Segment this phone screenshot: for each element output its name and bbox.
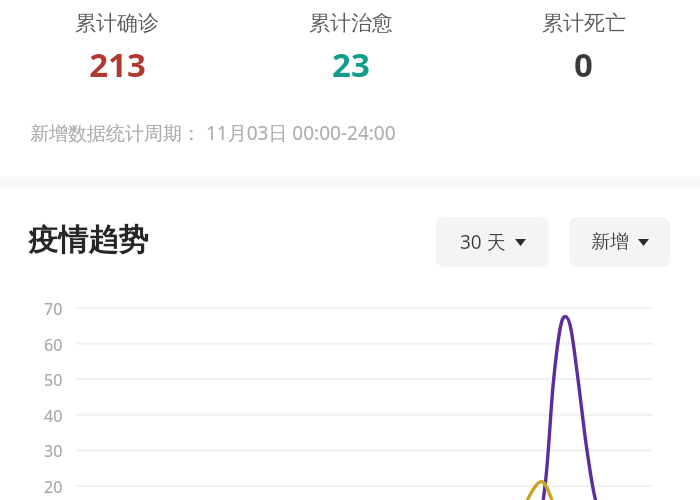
staticText: 60 bbox=[44, 334, 63, 356]
staticText: 213 bbox=[89, 42, 146, 87]
button[interactable]: 累计确诊 bbox=[0, 10, 234, 87]
button[interactable]: 累计治愈 bbox=[234, 10, 467, 87]
button[interactable]: 累计死亡 bbox=[467, 10, 700, 87]
staticText: 70 bbox=[44, 298, 63, 320]
button[interactable]: 新增 bbox=[569, 217, 670, 267]
staticText: 23 bbox=[332, 42, 370, 87]
staticText: 累计确诊 bbox=[75, 10, 159, 36]
staticText: 累计死亡 bbox=[542, 10, 626, 36]
staticText: 新增 bbox=[591, 230, 629, 254]
staticText: 疫情趋势 bbox=[28, 221, 148, 259]
staticText: 0 bbox=[574, 42, 593, 87]
staticText: 30 天 bbox=[460, 229, 506, 255]
button[interactable]: 30 天 bbox=[436, 217, 549, 267]
button[interactable]: 新增数据统计周期： 11月03日 00:00-24:00 bbox=[30, 120, 396, 146]
staticText: 40 bbox=[44, 405, 63, 427]
other: 疫情趋势折线图 bbox=[0, 290, 700, 500]
staticText: 30 bbox=[44, 440, 63, 462]
staticText: 50 bbox=[44, 369, 63, 391]
staticText: 20 bbox=[44, 476, 63, 498]
staticText: 新增数据统计周期： 11月03日 00:00-24:00 bbox=[30, 120, 396, 146]
button[interactable]: 疫情趋势 bbox=[28, 221, 148, 259]
staticText: 累计治愈 bbox=[309, 10, 393, 36]
